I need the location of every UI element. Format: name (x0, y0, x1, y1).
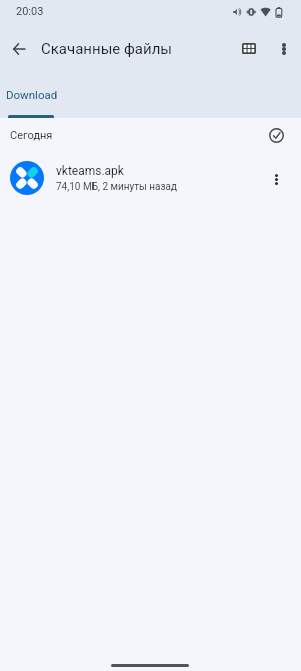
button[interactable]: Download (0, 78, 61, 118)
button[interactable]: Select all (263, 122, 289, 148)
button[interactable]: More options (270, 35, 298, 63)
staticText: 20:03 (16, 5, 44, 18)
staticText: 74,10 МБ, 2 минуты назад (56, 181, 178, 193)
staticText: Сегодня (10, 129, 53, 142)
button[interactable]: File options (262, 165, 290, 193)
button[interactable]: vkteams.apk (0, 153, 301, 197)
staticText: Download (6, 88, 58, 101)
button[interactable]: Grid view (234, 33, 264, 63)
staticText: vkteams.apk (56, 164, 124, 178)
staticText: Скачанные файлы (41, 40, 172, 58)
button[interactable]: Back (1, 31, 37, 67)
